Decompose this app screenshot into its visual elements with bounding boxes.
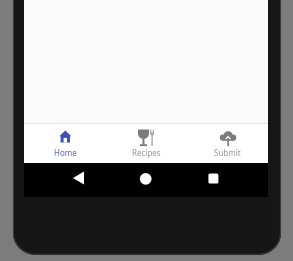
button[interactable] (67, 171, 91, 189)
button[interactable]: Home (24, 124, 106, 158)
button[interactable] (202, 171, 226, 189)
staticText: Recipes (132, 147, 161, 158)
staticText: Home (54, 147, 77, 158)
button[interactable]: Recipes (106, 124, 187, 158)
staticText: Submit (214, 147, 241, 158)
button[interactable] (134, 171, 158, 189)
button[interactable]: Submit (187, 124, 268, 158)
